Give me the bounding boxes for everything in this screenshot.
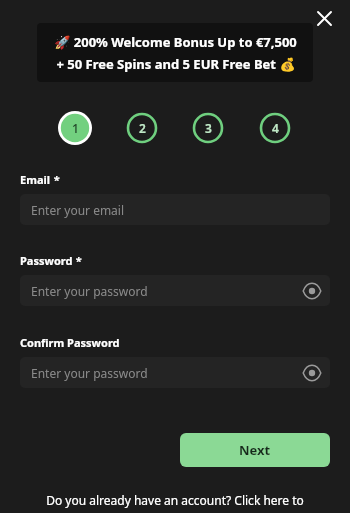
staticText: Enter your email — [31, 202, 125, 218]
button[interactable]: Do you already have an account? Click he… — [0, 489, 350, 511]
button[interactable]: Next — [180, 433, 330, 467]
button[interactable]: Show password — [299, 360, 325, 386]
button[interactable]: 2 — [125, 111, 159, 145]
button[interactable]: Enter your password — [20, 357, 330, 388]
staticText: Confirm Password — [20, 335, 120, 350]
staticText: 4 — [272, 120, 279, 136]
staticText: 2 — [139, 120, 146, 136]
button[interactable]: 3 — [191, 111, 225, 145]
button[interactable]: 4 — [258, 111, 292, 145]
button[interactable]: 1 — [58, 111, 92, 145]
staticText: Email — [20, 172, 51, 187]
button[interactable]: Show password — [299, 278, 325, 304]
staticText: + 50 Free Spins and 5 EUR Free Bet 💰 — [56, 55, 296, 73]
staticText: Do you already have an account? Click he… — [46, 492, 304, 508]
button[interactable]: Enter your email — [20, 194, 330, 225]
button[interactable]: 🚀 200% Welcome Bonus Up to €7,500 — [37, 23, 313, 82]
button[interactable]: Enter your password — [20, 275, 330, 306]
staticText: Next — [239, 441, 271, 459]
staticText: Password — [20, 253, 73, 268]
staticText: * — [73, 253, 82, 268]
staticText: Enter your password — [31, 283, 148, 299]
staticText: 🚀 200% Welcome Bonus Up to €7,500 — [54, 33, 297, 51]
staticText: Enter your password — [31, 365, 148, 381]
staticText: 3 — [205, 120, 212, 136]
staticText: 1 — [72, 120, 79, 136]
button[interactable]: Close — [311, 5, 338, 32]
staticText: * — [51, 172, 60, 187]
